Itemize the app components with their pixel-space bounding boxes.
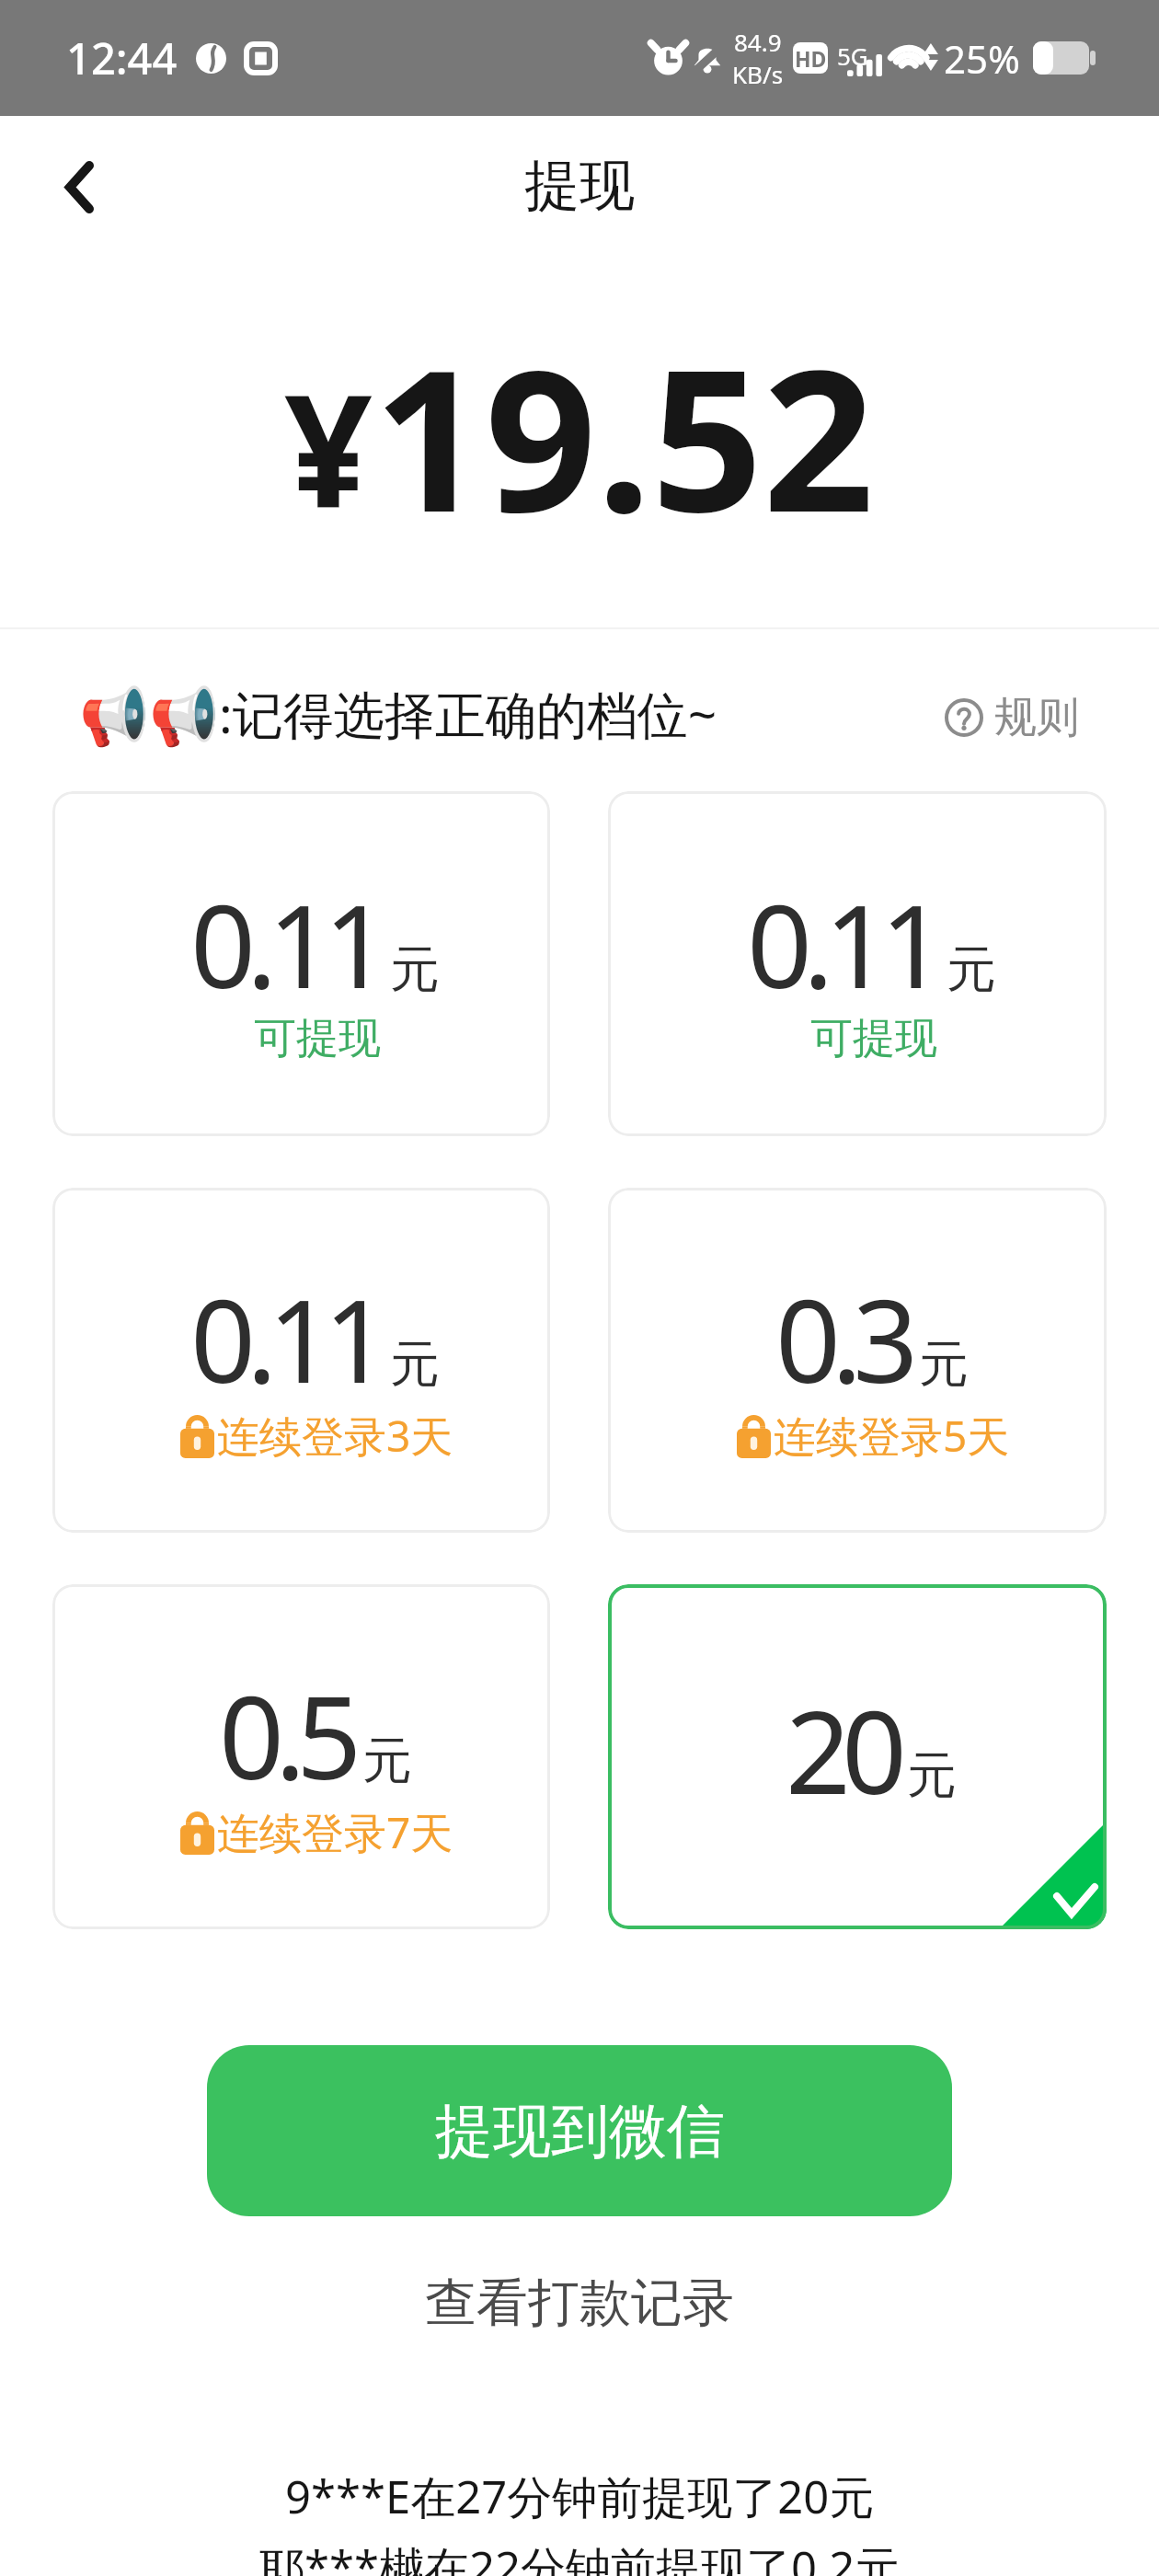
staticText: 元 <box>919 1333 969 1396</box>
staticText: 0.5 <box>219 1657 353 1812</box>
staticText: 规则 <box>994 691 1079 744</box>
staticText: 连续登录7天 <box>217 1803 453 1861</box>
button[interactable]: 提现到微信 <box>207 2045 952 2216</box>
staticText: 0.11 <box>190 1260 381 1416</box>
staticText: 提现到微信 <box>435 2095 725 2168</box>
staticText: 84.9 <box>734 26 782 58</box>
staticText: ¥ <box>284 341 373 552</box>
button[interactable]: 0.5 <box>52 1584 550 1929</box>
button[interactable]: 0.11 <box>608 791 1107 1136</box>
button[interactable]: 规则 <box>945 684 1079 737</box>
staticText: 元 <box>390 1333 440 1396</box>
staticText: 元 <box>362 1730 412 1792</box>
staticText: 12:44 <box>66 29 178 87</box>
staticText: 元 <box>947 938 996 1001</box>
staticText: HD <box>795 44 827 73</box>
button[interactable]: Back <box>24 132 134 242</box>
staticText: 连续登录3天 <box>217 1407 453 1465</box>
staticText: 连续登录5天 <box>774 1407 1010 1465</box>
staticText: 0.11 <box>190 866 381 1021</box>
staticText: KB/s <box>732 58 784 90</box>
staticText: 可提现 <box>810 1012 937 1065</box>
button[interactable]: 0.3 <box>608 1188 1107 1533</box>
staticText: 5G <box>837 40 868 72</box>
button[interactable]: 0.11 <box>52 791 550 1136</box>
staticText: 📢📢 <box>79 684 219 749</box>
staticText: 元 <box>390 938 440 1001</box>
staticText: 耶***樾在22分钟前提现了0.2元 <box>259 2536 901 2576</box>
staticText: 19.52 <box>373 303 875 569</box>
button[interactable]: 查看打款记录 <box>407 2265 752 2341</box>
staticText: 0.11 <box>747 866 937 1021</box>
button[interactable]: 20 <box>608 1584 1107 1929</box>
staticText: 0.3 <box>775 1260 910 1416</box>
button[interactable]: 0.11 <box>52 1188 550 1533</box>
staticText: 元 <box>907 1744 957 1807</box>
staticText: 25% <box>944 32 1020 85</box>
staticText: :记得选择正确的档位~ <box>219 679 717 748</box>
staticText: 20 <box>786 1672 898 1827</box>
staticText: 9***E在27分钟前提现了20元 <box>285 2466 875 2527</box>
staticText: 可提现 <box>254 1012 381 1065</box>
staticText: 提现 <box>524 151 635 221</box>
